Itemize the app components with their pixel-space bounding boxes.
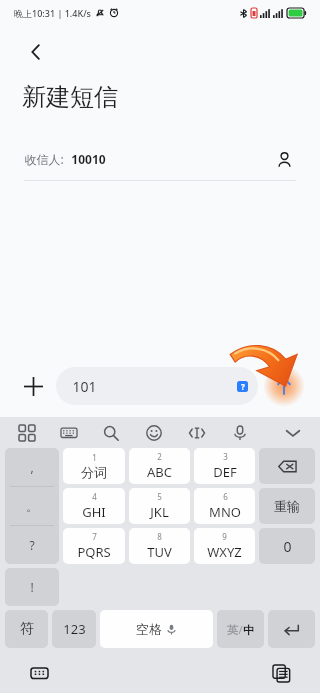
staticText: 分词 — [81, 464, 107, 480]
button[interactable]: Text editing — [184, 420, 210, 446]
staticText: 新建短信 — [22, 82, 118, 112]
button[interactable]: Back — [20, 36, 52, 68]
button[interactable]: Hide keyboard — [24, 658, 54, 688]
staticText: DEF — [213, 463, 237, 481]
button[interactable]: 8 — [129, 528, 190, 564]
button[interactable]: 英 — [217, 610, 264, 648]
button[interactable]: 重输 — [259, 488, 315, 524]
button[interactable]: Emoji — [141, 420, 167, 446]
staticText: 4 — [92, 491, 97, 502]
button[interactable]: 3 — [194, 448, 255, 484]
staticText: ! — [30, 579, 34, 595]
staticText: 中 — [243, 623, 254, 637]
staticText: ? — [29, 537, 35, 553]
button[interactable]: 123 — [52, 610, 96, 648]
button[interactable]: 2 — [129, 448, 190, 484]
button[interactable]: Hide keyboard — [280, 420, 306, 446]
button[interactable]: 5 — [129, 488, 190, 524]
button[interactable]: 收信人: — [0, 142, 320, 176]
staticText: WXYZ — [207, 543, 242, 561]
button[interactable]: ? — [5, 526, 59, 564]
button[interactable]: 1 — [63, 448, 125, 484]
staticText: 2 — [157, 451, 162, 462]
staticText: 6 — [223, 491, 228, 502]
staticText: 7 — [92, 531, 97, 542]
button[interactable]: Send — [264, 366, 304, 406]
button[interactable]: 0 — [259, 528, 315, 564]
button[interactable]: Enter — [268, 610, 315, 648]
staticText: 9 — [222, 531, 227, 542]
button[interactable]: Keyboard layout — [56, 420, 82, 446]
button[interactable]: 4 — [63, 488, 125, 524]
button[interactable]: Choose contact — [272, 147, 296, 171]
staticText: 0 — [283, 537, 292, 556]
button[interactable]: Voice input — [227, 420, 253, 446]
button[interactable]: 9 — [194, 528, 255, 564]
staticText: 晚上10:31 | 1.4K/s — [14, 7, 91, 19]
staticText: 符 — [20, 620, 34, 638]
staticText: , — [30, 459, 34, 475]
staticText: 101 — [72, 377, 97, 396]
button[interactable]: Recent apps — [266, 658, 296, 688]
staticText: ? — [241, 381, 245, 392]
staticText: 8 — [157, 531, 162, 542]
staticText: ABC — [147, 463, 172, 481]
staticText: 5 — [157, 491, 162, 502]
other: Backspace — [276, 455, 298, 477]
button[interactable]: Backspace — [259, 448, 315, 484]
staticText: GHI — [82, 503, 106, 521]
staticText: 收信人: — [24, 151, 64, 167]
staticText: MNO — [209, 503, 241, 521]
staticText: TUV — [147, 543, 172, 561]
staticText: 。 — [26, 499, 38, 514]
staticText: PQRS — [77, 543, 111, 561]
staticText: 3 — [223, 451, 228, 462]
button[interactable]: 符 — [5, 610, 48, 648]
staticText: 重输 — [274, 498, 300, 514]
staticText: / — [238, 622, 243, 637]
button[interactable]: Panel — [14, 420, 40, 446]
button[interactable]: 6 — [194, 488, 255, 524]
button[interactable]: , — [5, 448, 59, 486]
button[interactable]: ! — [5, 568, 59, 606]
button[interactable]: Add attachment — [16, 369, 50, 403]
button[interactable]: 101 — [56, 367, 258, 405]
staticText: 英 — [227, 623, 238, 637]
staticText: 123 — [63, 620, 86, 638]
button[interactable]: 空格 — [100, 610, 213, 648]
staticText: JKL — [150, 503, 169, 521]
staticText: 1 — [92, 452, 97, 463]
staticText: 空格 — [136, 621, 162, 637]
button[interactable]: 7 — [63, 528, 125, 564]
staticText: 10010 — [71, 151, 106, 167]
button[interactable]: Search — [98, 420, 124, 446]
